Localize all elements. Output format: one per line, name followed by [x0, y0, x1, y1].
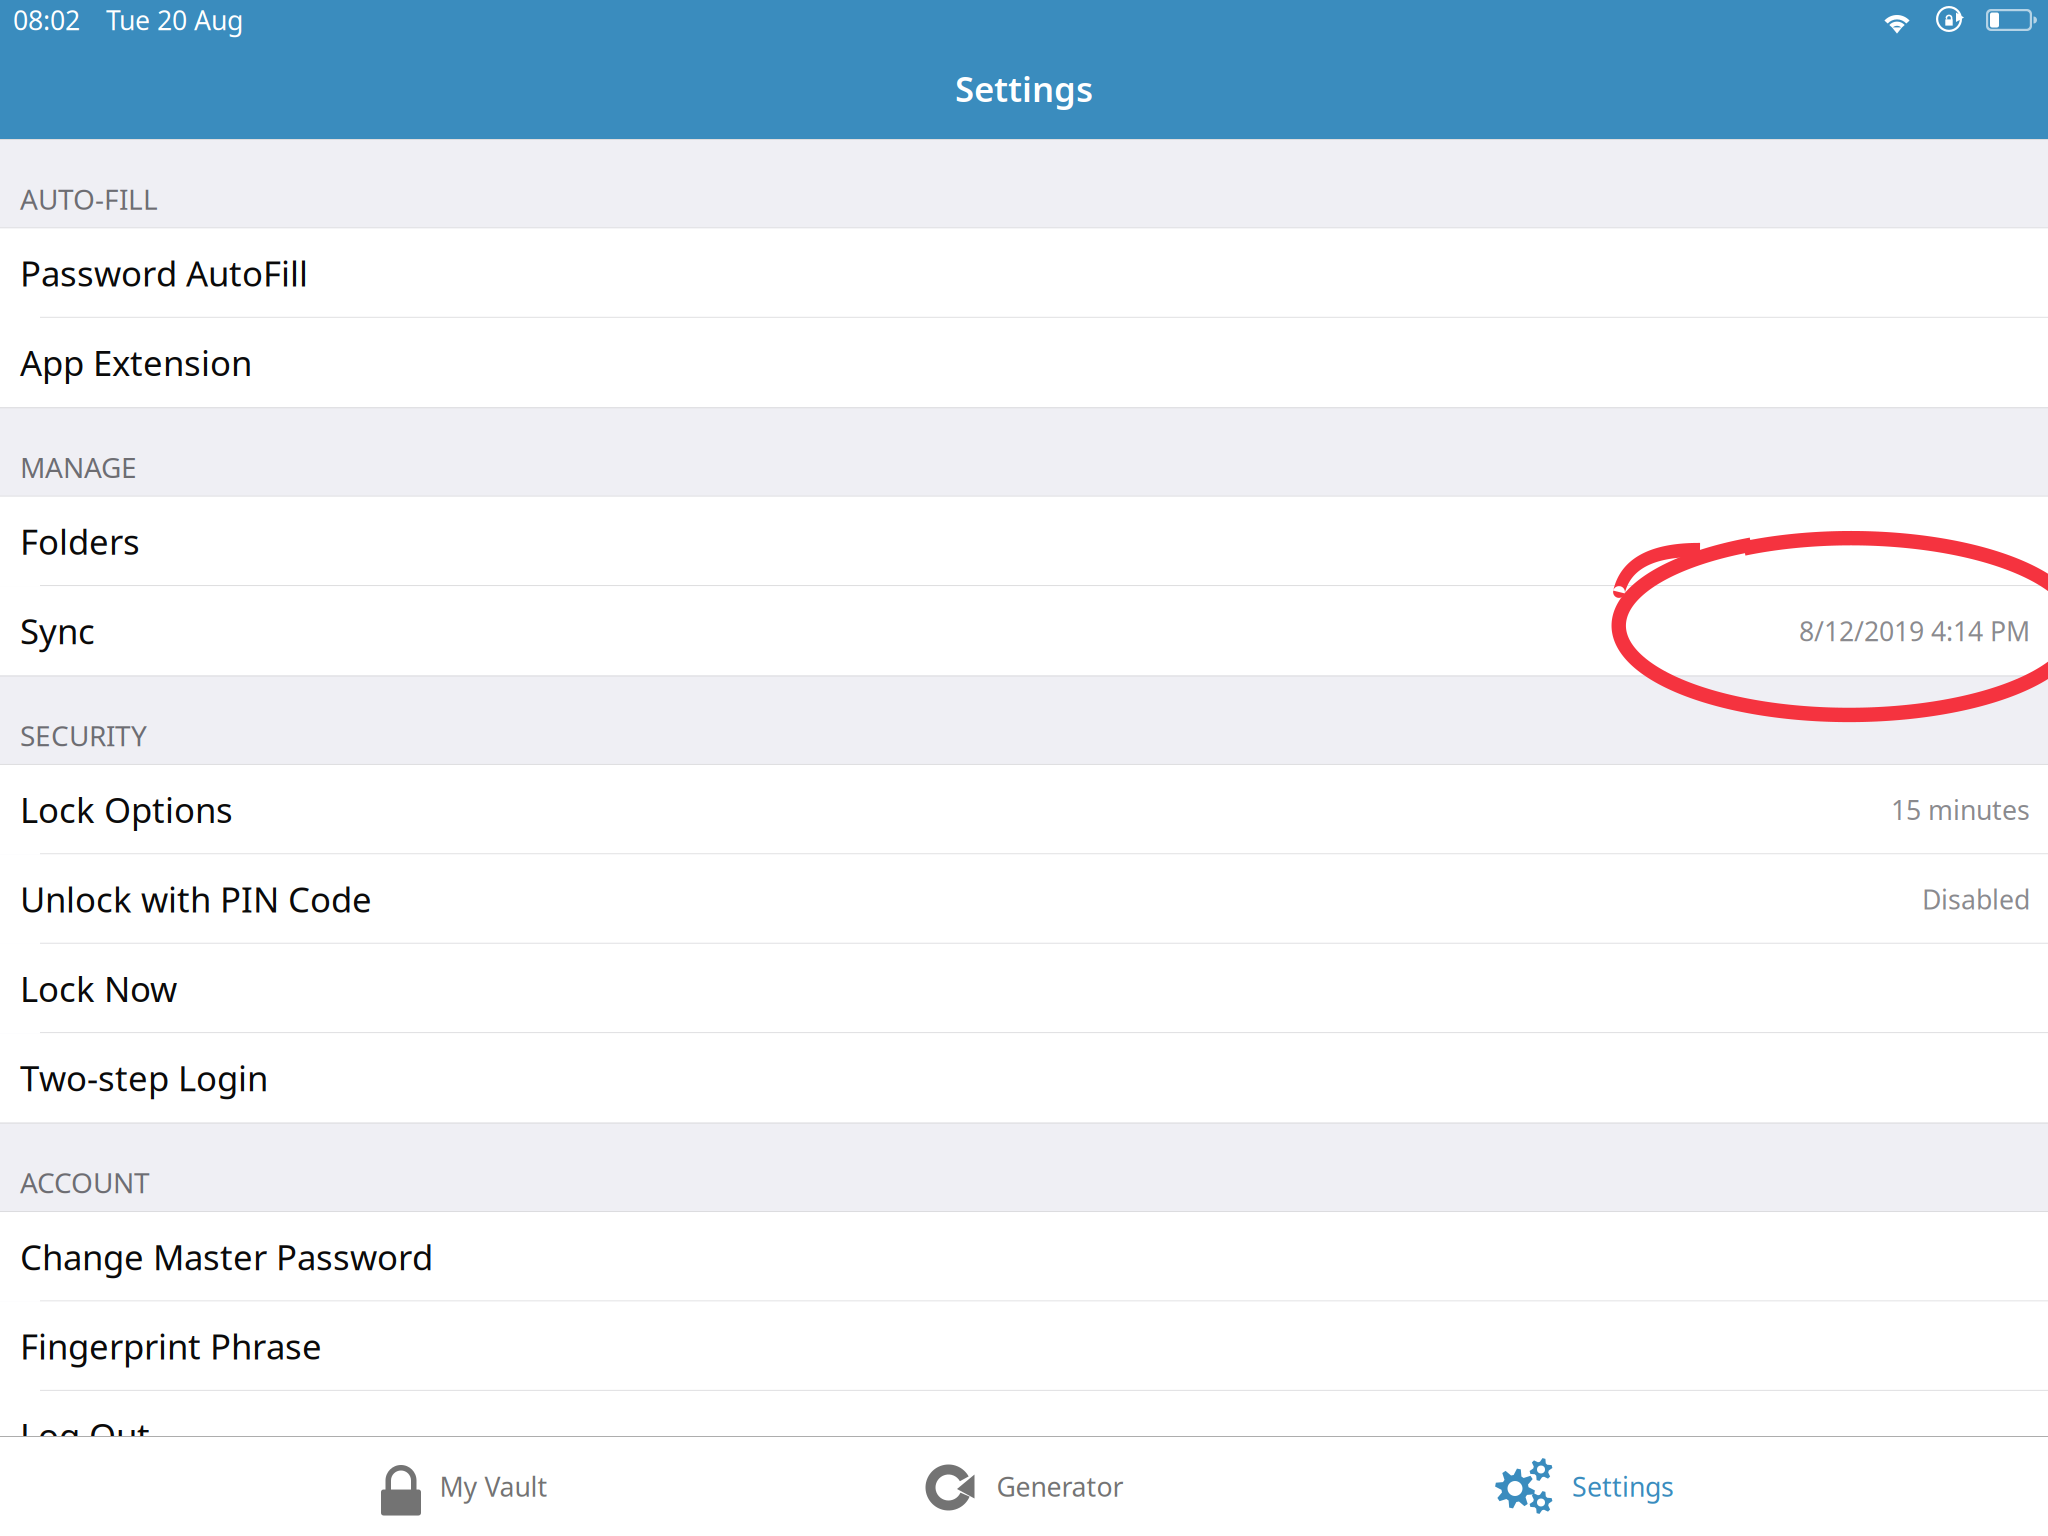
button[interactable]: App Extension	[0, 318, 2048, 407]
button[interactable]: Password AutoFill	[0, 228, 2048, 318]
button[interactable]: My Vault	[184, 1437, 744, 1536]
staticText: Change Master Password	[20, 1234, 433, 1280]
staticText: App Extension	[20, 339, 252, 385]
staticText: Lock Options	[20, 787, 233, 833]
staticText: Settings	[955, 65, 1093, 111]
button[interactable]: Folders	[0, 497, 2048, 586]
button[interactable]: Unlock with PIN Code	[0, 854, 2048, 944]
button[interactable]: Lock Now	[0, 944, 2048, 1033]
staticText: Disabled	[1922, 881, 2030, 917]
staticText: AUTO-FILL	[20, 180, 158, 217]
button[interactable]: Generator	[744, 1437, 1304, 1536]
staticText: Fingerprint Phrase	[20, 1323, 322, 1369]
staticText: MANAGE	[20, 448, 137, 486]
staticText: Tue 20 Aug	[106, 2, 243, 38]
button[interactable]: Settings	[1304, 1437, 1864, 1536]
button[interactable]: Log Out	[0, 1391, 2048, 1480]
staticText: 15 minutes	[1891, 792, 2030, 827]
button[interactable]: Sync	[0, 586, 2048, 675]
staticText: 08:02	[13, 2, 80, 38]
staticText: ACCOUNT	[20, 1164, 150, 1201]
staticText: Sync	[20, 608, 95, 654]
staticText: SECURITY	[20, 717, 147, 754]
staticText: Folders	[20, 518, 140, 564]
staticText: My Vault	[439, 1469, 547, 1504]
button[interactable]: Lock Options	[0, 765, 2048, 854]
staticText: Settings	[1572, 1469, 1674, 1504]
staticText: Log Out	[20, 1413, 150, 1459]
staticText: Lock Now	[20, 965, 177, 1011]
staticText: Unlock with PIN Code	[20, 876, 372, 922]
staticText: Generator	[996, 1469, 1123, 1504]
staticText: 8/12/2019 4:14 PM	[1799, 613, 2030, 648]
staticText: Two-step Login	[20, 1055, 268, 1101]
button[interactable]: Two-step Login	[0, 1033, 2048, 1123]
button[interactable]: Fingerprint Phrase	[0, 1301, 2048, 1391]
staticText: Password AutoFill	[20, 250, 308, 296]
button[interactable]: Change Master Password	[0, 1212, 2048, 1301]
